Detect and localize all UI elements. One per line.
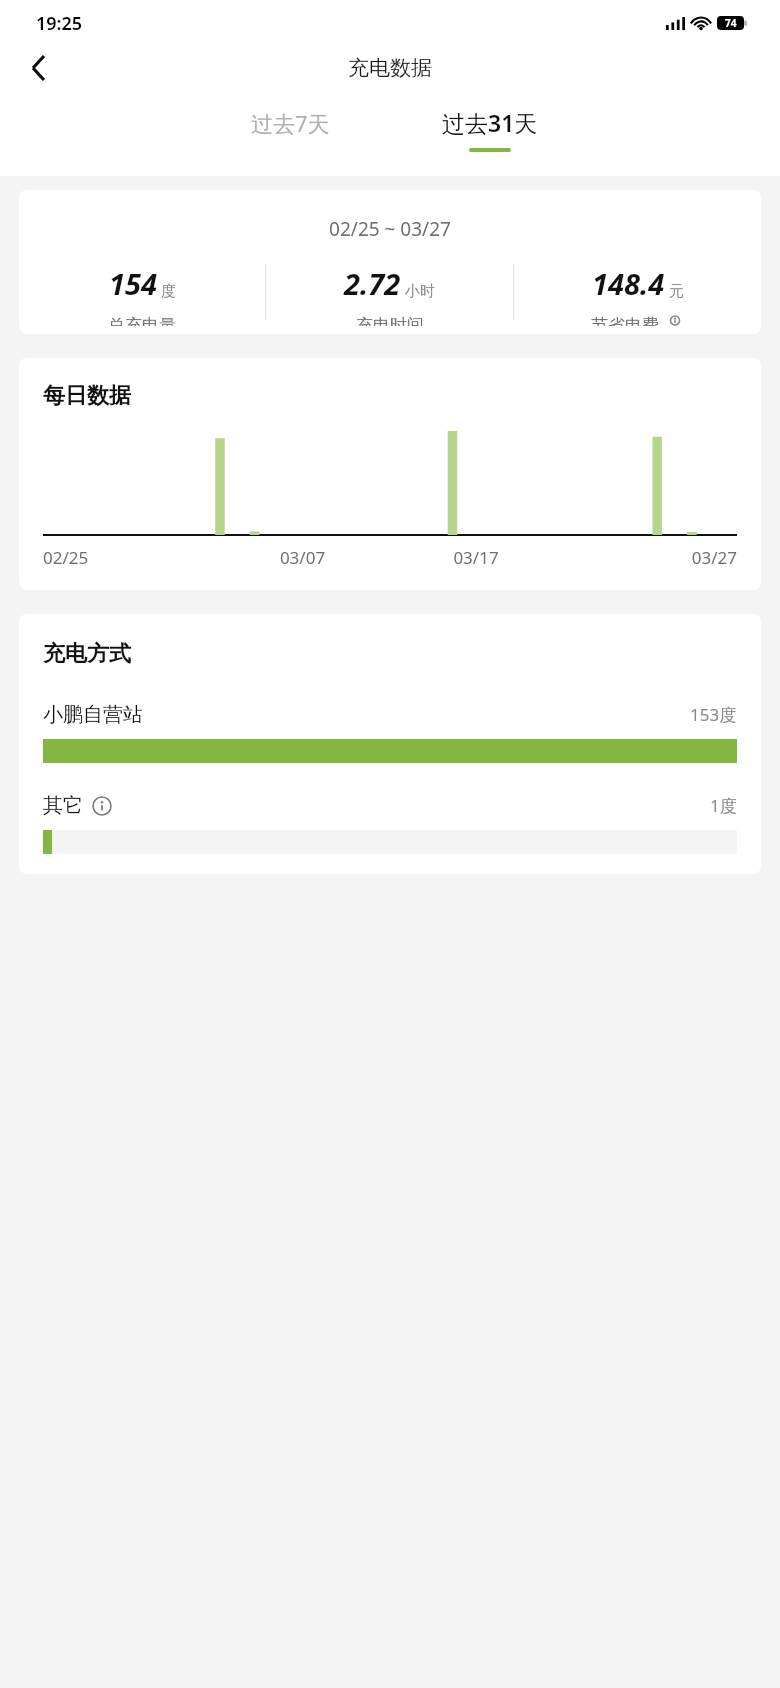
staticText: 74	[725, 16, 737, 30]
staticText: 02/25	[43, 546, 216, 569]
button[interactable]: 每日数据	[19, 358, 761, 590]
staticText: 154	[109, 264, 157, 303]
staticText: 148.4	[592, 264, 665, 303]
staticText: 1度	[710, 794, 737, 817]
staticText: 03/07	[216, 546, 389, 569]
staticText: 02/25 ~ 03/27	[19, 216, 761, 242]
staticText: 03/27	[563, 546, 737, 569]
staticText: 19:25	[36, 11, 83, 36]
staticText: 2.72	[344, 264, 401, 303]
button[interactable]: 过去7天	[190, 94, 390, 176]
staticText: 其它	[43, 793, 83, 818]
button[interactable]: Back	[14, 44, 62, 92]
staticText: 153度	[690, 703, 737, 726]
button[interactable]: 过去31天	[390, 94, 590, 176]
staticText: 充电数据	[348, 55, 432, 81]
staticText: 元	[669, 282, 684, 301]
staticText: 总充电量	[108, 315, 176, 326]
button[interactable]: 充电方式	[19, 614, 761, 874]
staticText: 度	[161, 282, 176, 301]
staticText: 充电方式	[43, 640, 131, 668]
staticText: 节省电费	[591, 315, 659, 326]
staticText: 03/17	[389, 546, 563, 569]
staticText: 每日数据	[43, 382, 131, 410]
button[interactable]: 其它说明	[91, 795, 113, 817]
staticText: 过去7天	[251, 108, 330, 138]
staticText: 小鹏自营站	[43, 702, 143, 727]
button[interactable]: 说明	[665, 315, 685, 326]
button[interactable]: 02/25 ~ 03/27	[19, 190, 761, 334]
staticText: 充电时间	[356, 315, 424, 326]
staticText: 小时	[405, 282, 435, 301]
staticText: 过去31天	[442, 107, 538, 138]
